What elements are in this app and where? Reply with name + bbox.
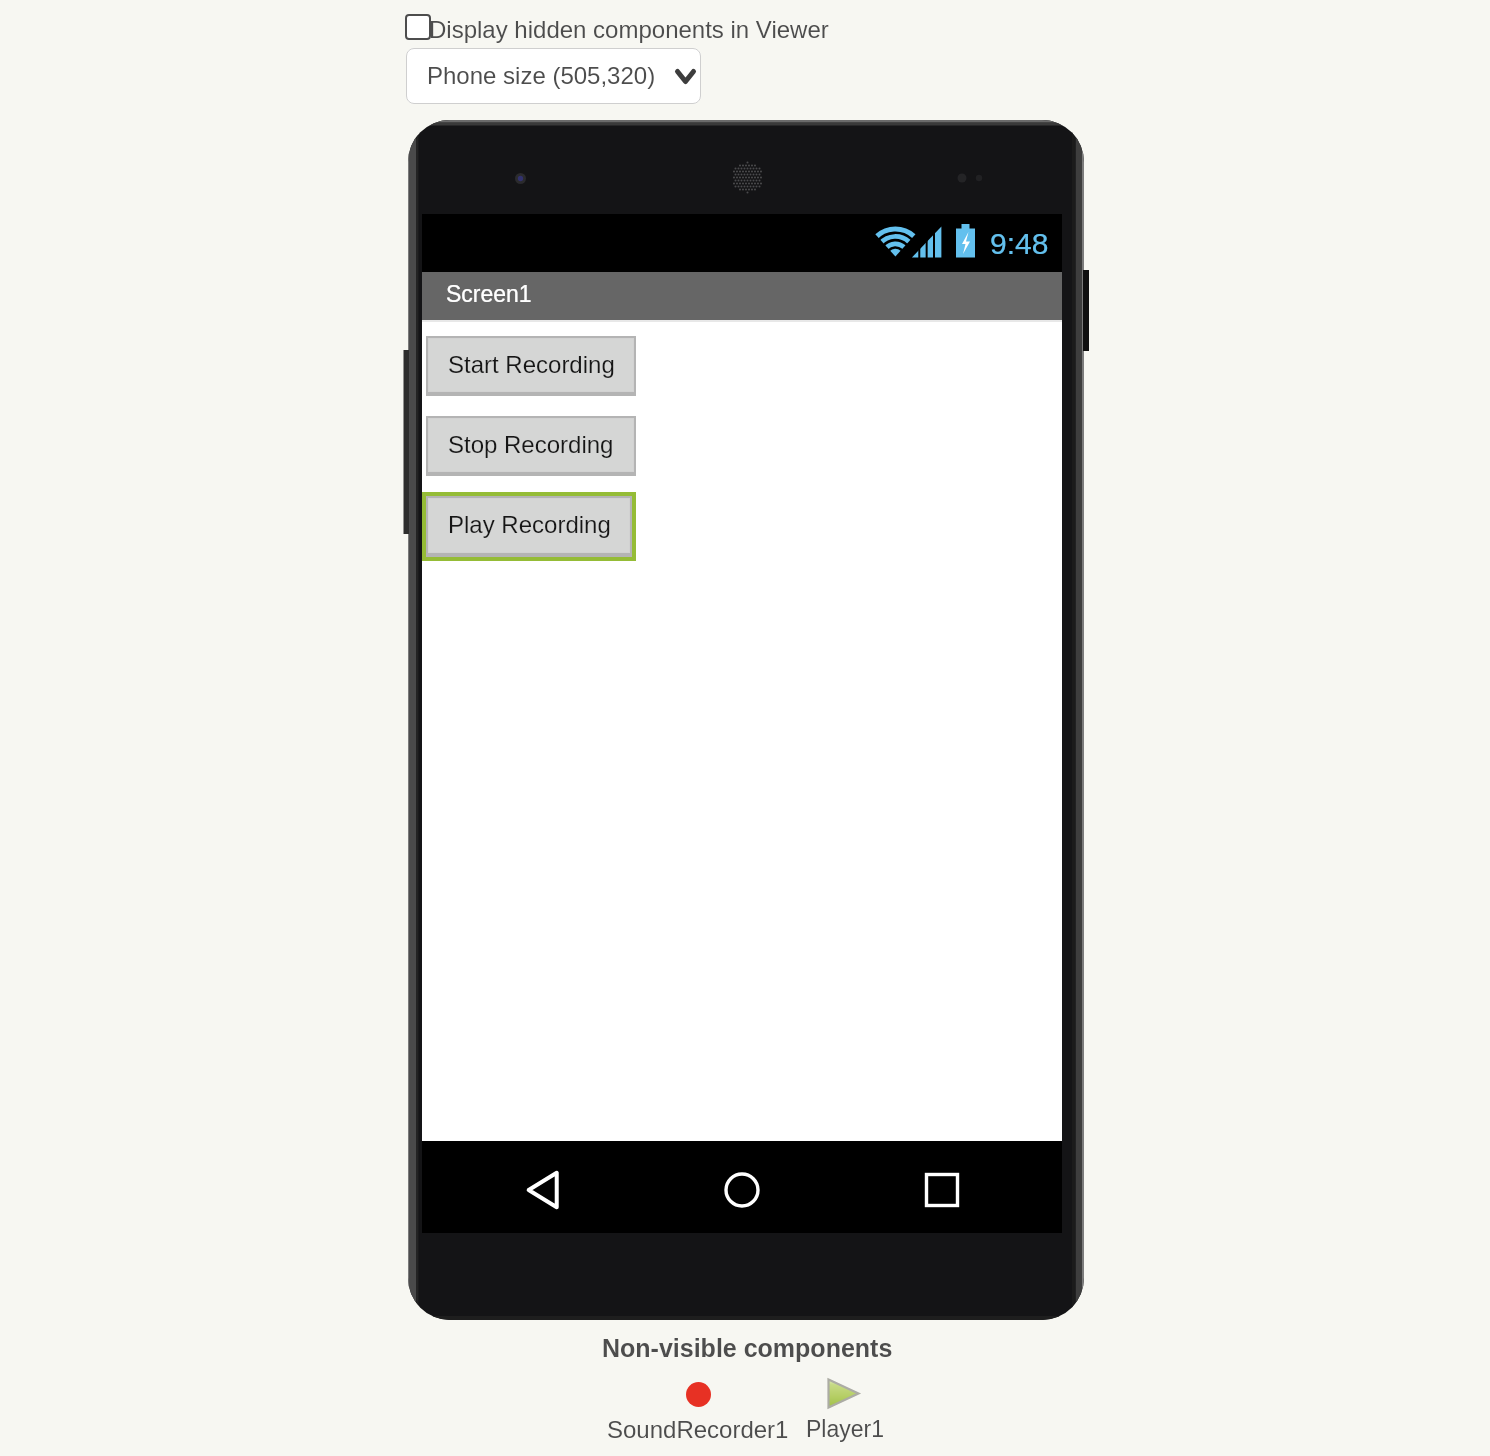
staticText: Play Recording — [448, 511, 611, 538]
button[interactable]: Back — [522, 1167, 568, 1213]
staticText: Start Recording — [448, 351, 615, 378]
button[interactable]: Home — [719, 1167, 765, 1213]
button[interactable]: SoundRecorder1 — [606, 1378, 788, 1440]
staticText: Player1 — [806, 1416, 884, 1442]
staticText: SoundRecorder1 — [607, 1416, 789, 1443]
button[interactable]: Stop Recording — [426, 416, 636, 476]
button[interactable]: Start Recording — [426, 336, 636, 396]
staticText: Screen1 — [446, 281, 532, 307]
button[interactable]: Display hidden components in Viewer — [405, 14, 431, 40]
staticText: 9:48 — [990, 227, 1049, 261]
staticText: Stop Recording — [448, 431, 614, 458]
staticText: Display hidden components in Viewer — [429, 16, 829, 43]
staticText: Non-visible components — [602, 1334, 893, 1362]
button[interactable]: Phone size (505,320) — [406, 48, 701, 104]
button[interactable]: Player1 — [805, 1374, 883, 1440]
button[interactable]: Recents — [919, 1167, 965, 1213]
staticText: Phone size (505,320) — [427, 62, 656, 89]
button[interactable]: Play Recording — [422, 492, 636, 561]
